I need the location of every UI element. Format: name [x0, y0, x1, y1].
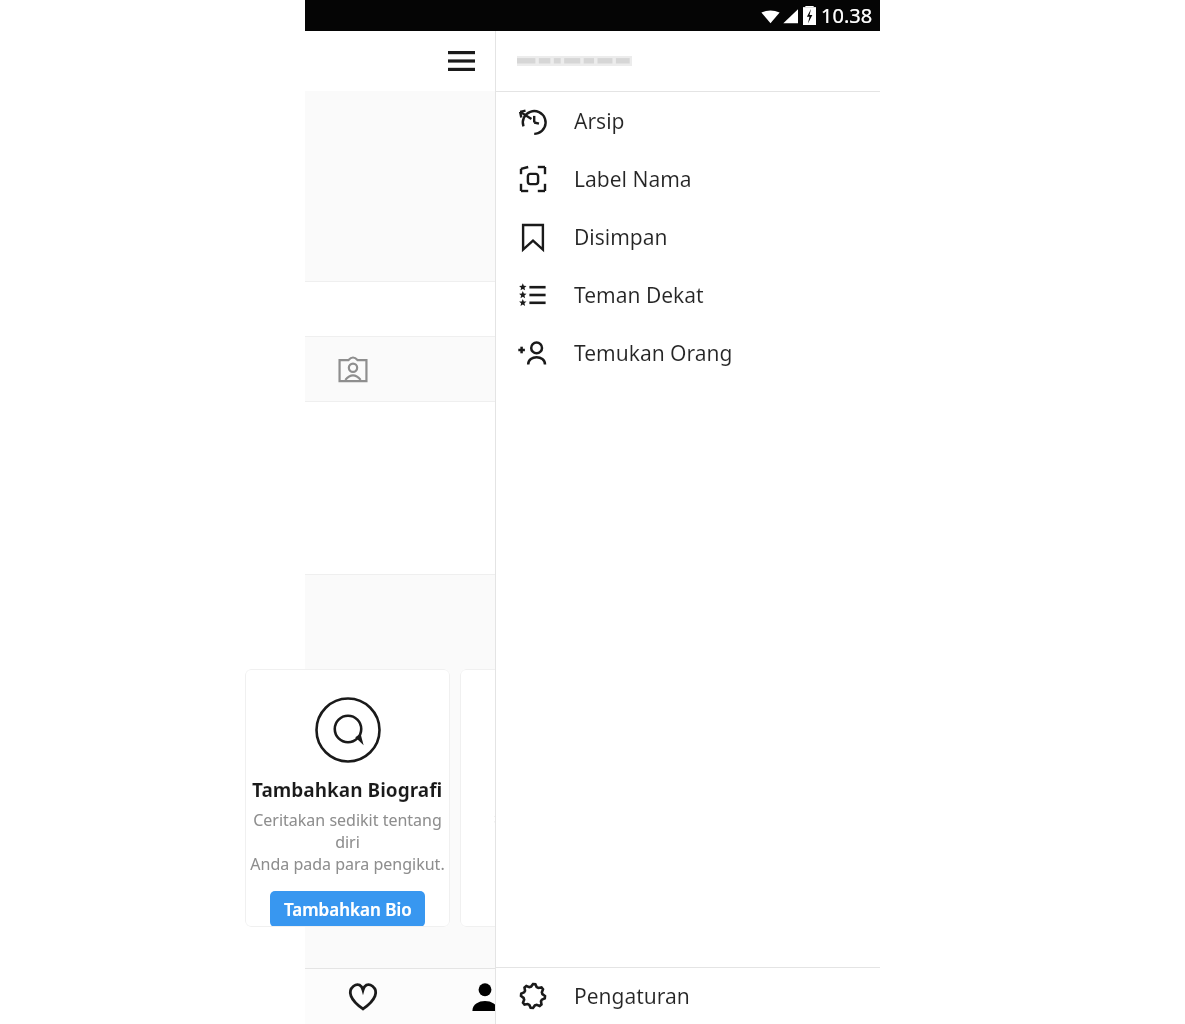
button[interactable]: Teman Dekat	[495, 266, 880, 324]
button[interactable]	[518, 290, 748, 328]
staticText: Label Nama	[574, 165, 692, 194]
button[interactable]: Pengaturan	[495, 968, 880, 1024]
staticText: Teman Dekat	[574, 281, 704, 310]
button[interactable]: Arsip	[495, 92, 880, 150]
button[interactable]: Name tag	[333, 349, 373, 389]
button[interactable]: Menu	[438, 38, 484, 84]
button[interactable]: Tambahkan Biografi	[245, 669, 450, 927]
staticText: Temukan Orang	[574, 339, 733, 368]
button[interactable]: Temukan Orang	[495, 324, 880, 382]
button[interactable]: Label Nama	[495, 150, 880, 208]
button[interactable]: Disimpan	[495, 208, 880, 266]
button[interactable]: Activity	[305, 968, 420, 1024]
button[interactable]: Profile	[420, 968, 550, 1024]
staticText: Ceritakan sedikit tentang diri Anda pada…	[245, 809, 450, 875]
staticText: 151	[567, 119, 619, 160]
staticText: Arsip	[574, 107, 625, 136]
staticText: 10.38	[821, 2, 873, 29]
staticText: Disimpan	[574, 223, 668, 252]
button[interactable]: Tambahkan Bio	[270, 891, 425, 927]
staticText: Tambahkan Bio	[284, 898, 412, 921]
staticText: Tambahkan Biografi	[252, 777, 443, 803]
staticText: s	[494, 805, 503, 828]
staticText: Pengaturan	[574, 982, 690, 1011]
